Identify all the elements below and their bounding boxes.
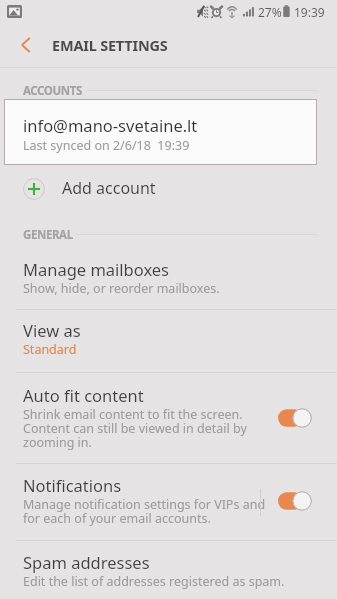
staticText: View as [23, 319, 81, 341]
staticText: 27% [258, 4, 282, 20]
button[interactable]: View as [23, 319, 268, 341]
staticText: ACCOUNTS [23, 83, 82, 99]
staticText: Manage notification settings for VIPs an… [23, 496, 266, 527]
button[interactable]: Add account [0, 171, 337, 206]
staticText: Last synced on 2/6/18 19:39 [23, 137, 190, 154]
button[interactable]: Toggle Notifications [278, 491, 312, 511]
staticText: Auto fit content [23, 384, 144, 406]
staticText: GENERAL [23, 227, 73, 243]
button[interactable]: Auto fit content [23, 384, 268, 429]
staticText: Show, hide, or reorder mailboxes. [23, 280, 220, 297]
button[interactable]: Toggle Auto fit content [278, 408, 312, 428]
staticText: Shrink email content to fit the screen. … [23, 406, 247, 451]
button[interactable]: Spam addresses [23, 551, 313, 573]
staticText: Notifications [23, 474, 122, 496]
staticText: Spam addresses [23, 551, 150, 573]
button[interactable]: info@mano-svetaine.lt [4, 99, 317, 165]
staticText: 19:39 [294, 4, 325, 20]
staticText: Manage mailboxes [23, 258, 170, 280]
staticText: Edit the list of addresses registered as… [23, 573, 285, 590]
button[interactable]: Manage mailboxes [23, 258, 268, 280]
staticText: EMAIL SETTINGS [52, 35, 168, 55]
staticText: info@mano-svetaine.lt [23, 114, 198, 136]
staticText: Add account [62, 177, 156, 199]
button[interactable]: Notifications [23, 474, 268, 505]
button[interactable]: Navigate up [6, 24, 48, 67]
staticText: Standard [23, 341, 77, 358]
